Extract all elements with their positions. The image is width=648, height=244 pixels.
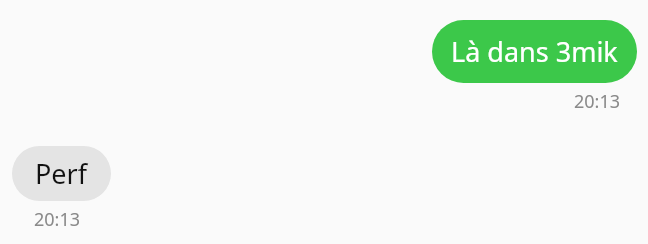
button[interactable]: Perf <box>12 146 111 201</box>
staticText: 20:13 <box>34 207 81 232</box>
staticText: Là dans 3mik <box>451 33 618 70</box>
staticText: Perf <box>35 155 88 192</box>
button[interactable]: Là dans 3mik <box>432 20 637 83</box>
staticText: 20:13 <box>573 89 620 114</box>
